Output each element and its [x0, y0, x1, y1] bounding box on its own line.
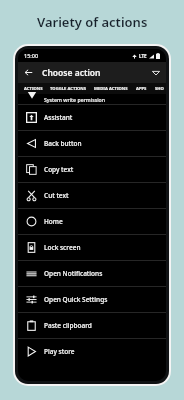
button[interactable]: System write permission — [18, 94, 166, 104]
button[interactable]: Paste clipboard — [18, 313, 166, 338]
staticText: Assistant — [44, 113, 73, 122]
button[interactable]: Lock screen — [18, 235, 166, 260]
button[interactable]: Open Notifications — [18, 261, 166, 286]
button[interactable]: Back button — [18, 131, 166, 156]
button[interactable]: Copy text — [18, 157, 166, 182]
staticText: Variety of actions — [37, 13, 148, 31]
button[interactable]: Filter — [145, 62, 166, 83]
staticText: LTE — [139, 53, 147, 59]
button[interactable]: MEDIA ACTIONS — [90, 86, 131, 92]
staticText: System write permission — [44, 96, 105, 103]
staticText: Cut text — [44, 191, 69, 200]
staticText: SHO — [155, 86, 164, 92]
button[interactable]: ACTIONS — [20, 86, 47, 92]
staticText: Play store — [44, 347, 75, 356]
button[interactable]: SHO — [152, 86, 166, 92]
button[interactable]: Play store — [18, 339, 166, 364]
button[interactable]: Home — [18, 209, 166, 234]
button[interactable]: Cut text — [18, 183, 166, 208]
staticText: Home — [44, 217, 63, 226]
staticText: ACTIONS — [24, 86, 43, 92]
button[interactable]: Back — [18, 62, 39, 83]
staticText: 15:00 — [24, 52, 39, 59]
staticText: Lock screen — [44, 243, 81, 252]
button[interactable]: TOGGLE ACTIONS — [47, 86, 90, 92]
staticText: Paste clipboard — [44, 321, 92, 330]
staticText: Back button — [44, 139, 82, 148]
staticText: APPS — [136, 86, 147, 92]
button[interactable]: Open Quick Settings — [18, 287, 166, 312]
staticText: Choose action — [42, 67, 101, 79]
staticText: Copy text — [44, 165, 74, 174]
staticText: Open Quick Settings — [44, 295, 108, 304]
button[interactable]: APPS — [131, 86, 152, 92]
button[interactable]: Assistant — [18, 105, 166, 130]
staticText: MEDIA ACTIONS — [94, 86, 128, 92]
staticText: Open Notifications — [44, 269, 103, 278]
staticText: TOGGLE ACTIONS — [50, 86, 87, 92]
